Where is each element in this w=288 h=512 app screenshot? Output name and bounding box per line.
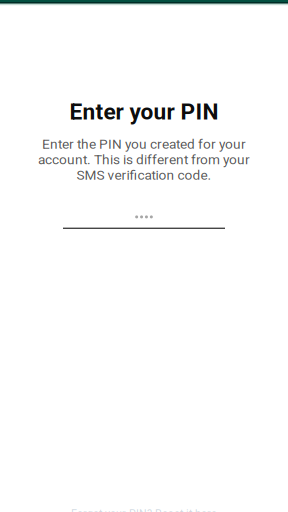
- staticText: account. This is different from your: [38, 152, 250, 168]
- staticText: Forgot your PIN? Reset it here: [71, 507, 217, 512]
- button[interactable]: Forgot your PIN? Reset it here: [71, 507, 217, 512]
- staticText: Enter the PIN you created for your: [42, 136, 246, 152]
- button[interactable]: PIN entry field: [63, 215, 225, 229]
- staticText: SMS verification code.: [76, 167, 211, 183]
- staticText: Enter your PIN: [69, 98, 218, 125]
